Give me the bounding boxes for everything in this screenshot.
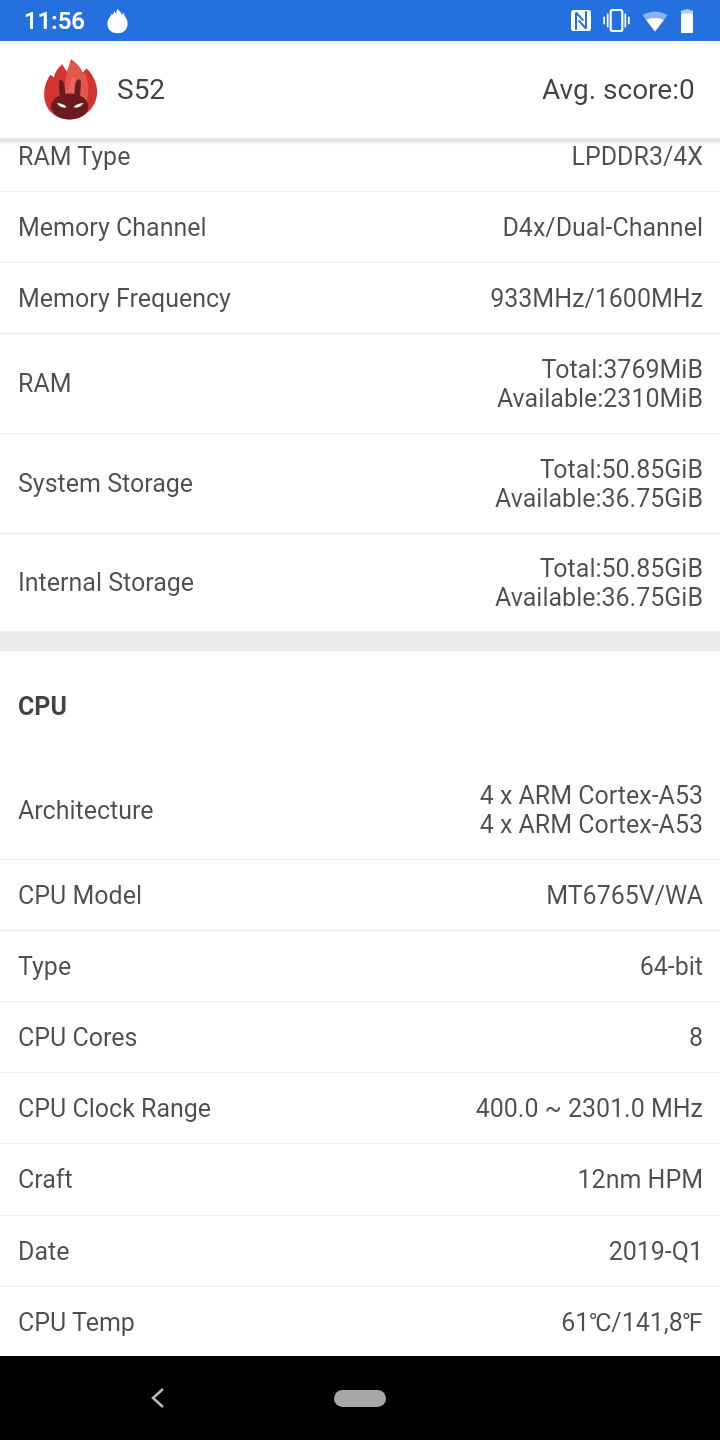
staticText: D4x/Dual-Channel bbox=[502, 213, 703, 242]
staticText: Available:36.75GiB bbox=[495, 583, 703, 612]
staticText: Available:2310MiB bbox=[496, 384, 703, 413]
staticText: 61℃/141,8℉ bbox=[561, 1308, 703, 1337]
staticText: Avg. score:0 bbox=[542, 73, 695, 106]
staticText: 12nm HPM bbox=[577, 1165, 703, 1194]
staticText: MT6765V/WA bbox=[546, 881, 703, 910]
button[interactable]: CPU Temp bbox=[0, 1287, 720, 1358]
staticText: CPU Temp bbox=[18, 1308, 135, 1337]
staticText: 400.0 ~ 2301.0 MHz bbox=[475, 1094, 703, 1123]
staticText: RAM Type bbox=[18, 142, 131, 171]
staticText: CPU Clock Range bbox=[18, 1094, 212, 1123]
button[interactable]: Type bbox=[0, 931, 720, 1001]
button[interactable]: System Storage bbox=[0, 434, 720, 533]
staticText: CPU Model bbox=[18, 881, 142, 910]
staticText: 64-bit bbox=[639, 952, 703, 981]
staticText: 4 x ARM Cortex-A53 bbox=[479, 810, 703, 839]
staticText: Memory Frequency bbox=[18, 284, 231, 313]
staticText: 11:56 bbox=[24, 7, 85, 35]
button[interactable]: CPU Model bbox=[0, 860, 720, 930]
staticText: 8 bbox=[688, 1023, 703, 1052]
button[interactable]: Memory Channel bbox=[0, 192, 720, 262]
staticText: CPU Cores bbox=[18, 1023, 138, 1052]
button[interactable]: Date bbox=[0, 1216, 720, 1286]
staticText: System Storage bbox=[18, 469, 194, 498]
staticText: Memory Channel bbox=[18, 213, 207, 242]
staticText: Date bbox=[18, 1237, 70, 1266]
staticText: CPU bbox=[18, 692, 67, 721]
button[interactable]: RAM bbox=[0, 334, 720, 433]
button[interactable]: Internal Storage bbox=[0, 534, 720, 631]
staticText: S52 bbox=[117, 73, 166, 106]
button[interactable]: Architecture bbox=[0, 761, 720, 859]
staticText: Total:3769MiB bbox=[541, 355, 703, 384]
staticText: LPDDR3/4X bbox=[571, 142, 703, 171]
button[interactable]: CPU Clock Range bbox=[0, 1073, 720, 1143]
staticText: Type bbox=[18, 952, 72, 981]
button[interactable]: Craft bbox=[0, 1144, 720, 1215]
staticText: Architecture bbox=[18, 796, 154, 825]
staticText: Total:50.85GiB bbox=[539, 455, 703, 484]
staticText: Available:36.75GiB bbox=[495, 484, 703, 513]
button[interactable]: RAM Type bbox=[0, 142, 720, 191]
staticText: 4 x ARM Cortex-A53 bbox=[479, 781, 703, 810]
button[interactable]: Memory Frequency bbox=[0, 263, 720, 333]
button[interactable]: Home bbox=[334, 1390, 386, 1407]
staticText: Internal Storage bbox=[18, 568, 195, 597]
staticText: Craft bbox=[18, 1165, 73, 1194]
button[interactable]: Back bbox=[133, 1373, 183, 1423]
staticText: 933MHz/1600MHz bbox=[490, 284, 703, 313]
staticText: 2019-Q1 bbox=[608, 1237, 703, 1266]
button[interactable]: CPU Cores bbox=[0, 1002, 720, 1072]
staticText: RAM bbox=[18, 369, 72, 398]
staticText: Total:50.85GiB bbox=[539, 554, 703, 583]
